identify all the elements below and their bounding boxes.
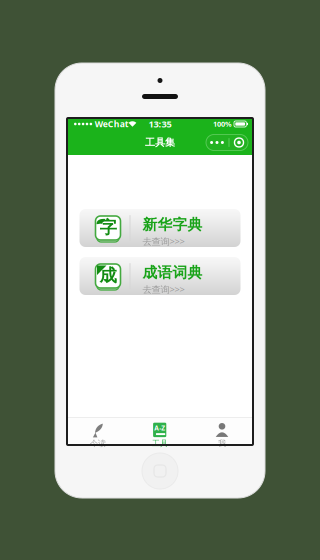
staticText: 今读 [90, 438, 106, 448]
staticText: 去查询>>> [142, 235, 184, 248]
staticText: 成语词典 [142, 263, 202, 282]
staticText: 成 [99, 265, 116, 286]
button[interactable]: 字 [79, 209, 240, 247]
button[interactable]: More options [206, 134, 248, 150]
staticText: 去查询>>> [142, 283, 184, 296]
staticText: 工具 [152, 438, 168, 448]
staticText: 13:35 [148, 118, 171, 130]
staticText: WeChat [95, 118, 129, 130]
staticText: 我 [218, 438, 226, 448]
button[interactable]: 成 [79, 257, 240, 295]
button[interactable]: 今读 [67, 418, 129, 445]
button[interactable]: Home [140, 451, 180, 491]
button[interactable]: A-Z [129, 418, 191, 445]
staticText: 新华字典 [142, 215, 202, 234]
staticText: A-Z [154, 423, 165, 432]
button[interactable]: 我 [191, 418, 253, 445]
staticText: 字 [99, 217, 116, 238]
staticText: 100% [213, 119, 232, 129]
staticText: 工具集 [145, 136, 175, 149]
